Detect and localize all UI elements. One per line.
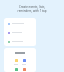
staticText: Create events, lists, reminders, with 1 … xyxy=(2,5,62,13)
other: Calendar xyxy=(23,59,26,62)
other: Notes xyxy=(15,59,18,62)
button[interactable]: Notes xyxy=(12,59,20,65)
button[interactable]: Reminders xyxy=(20,68,28,72)
button[interactable]: Event xyxy=(6,19,36,28)
button[interactable]: Tasks xyxy=(12,68,20,72)
other: Tasks xyxy=(15,68,18,71)
button[interactable]: Calendar xyxy=(20,59,28,65)
button[interactable]: Reminder xyxy=(6,28,36,37)
other: Reminders xyxy=(23,68,26,71)
button[interactable]: List xyxy=(6,37,36,46)
